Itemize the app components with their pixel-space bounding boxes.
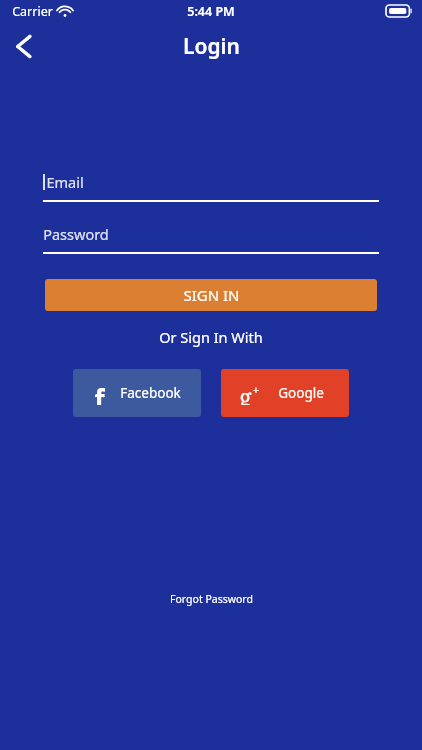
staticText: Google	[278, 384, 324, 402]
staticText: Email	[46, 172, 84, 192]
button[interactable]: SIGN IN	[45, 279, 377, 311]
staticText: SIGN IN	[183, 285, 240, 305]
staticText: Login	[183, 32, 240, 61]
staticText: 5:44 PM	[187, 3, 235, 20]
staticText: +	[252, 381, 260, 398]
button[interactable]: g	[221, 369, 349, 417]
staticText: f	[94, 381, 105, 405]
button[interactable]: f	[73, 369, 201, 417]
staticText: Forgot Password	[170, 592, 253, 606]
button[interactable]: Back	[0, 23, 46, 69]
staticText: Facebook	[120, 384, 181, 402]
staticText: g	[239, 381, 252, 405]
staticText: Or Sign In With	[159, 327, 263, 347]
staticText: Carrier	[12, 3, 53, 20]
button[interactable]: Forgot Password	[160, 588, 263, 610]
staticText: Password	[43, 224, 109, 244]
